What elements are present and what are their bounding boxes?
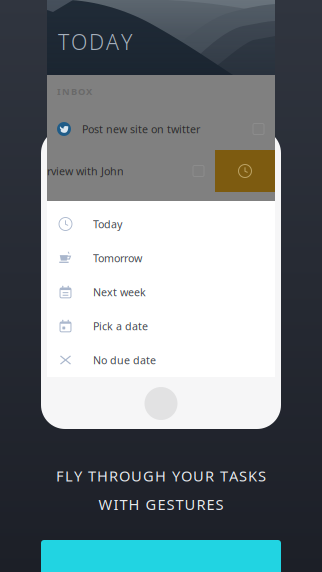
- button[interactable]: Pick a date: [47, 309, 275, 343]
- staticText: I N B O X: [57, 85, 92, 98]
- staticText: Next week: [93, 285, 146, 299]
- staticText: rview with John: [47, 164, 124, 178]
- button[interactable]: No due date: [47, 343, 275, 377]
- staticText: Pick a date: [93, 319, 148, 333]
- button[interactable]: Tomorrow: [47, 241, 275, 275]
- button[interactable]: Post new site on twitter: [47, 108, 275, 150]
- button[interactable]: Next week: [47, 275, 275, 309]
- staticText: No due date: [93, 353, 156, 367]
- button[interactable]: [41, 540, 281, 572]
- staticText: Tomorrow: [93, 251, 142, 265]
- button[interactable]: rview with John: [47, 150, 275, 192]
- staticText: T O D A Y: [58, 28, 132, 56]
- staticText: Today: [93, 217, 122, 231]
- staticText: F L Y T H R O U G H Y O U R T A S K S: [56, 466, 266, 485]
- staticText: Post new site on twitter: [82, 122, 200, 136]
- staticText: W I T H G E S T U R E S: [98, 494, 223, 514]
- button[interactable]: Today: [47, 207, 275, 241]
